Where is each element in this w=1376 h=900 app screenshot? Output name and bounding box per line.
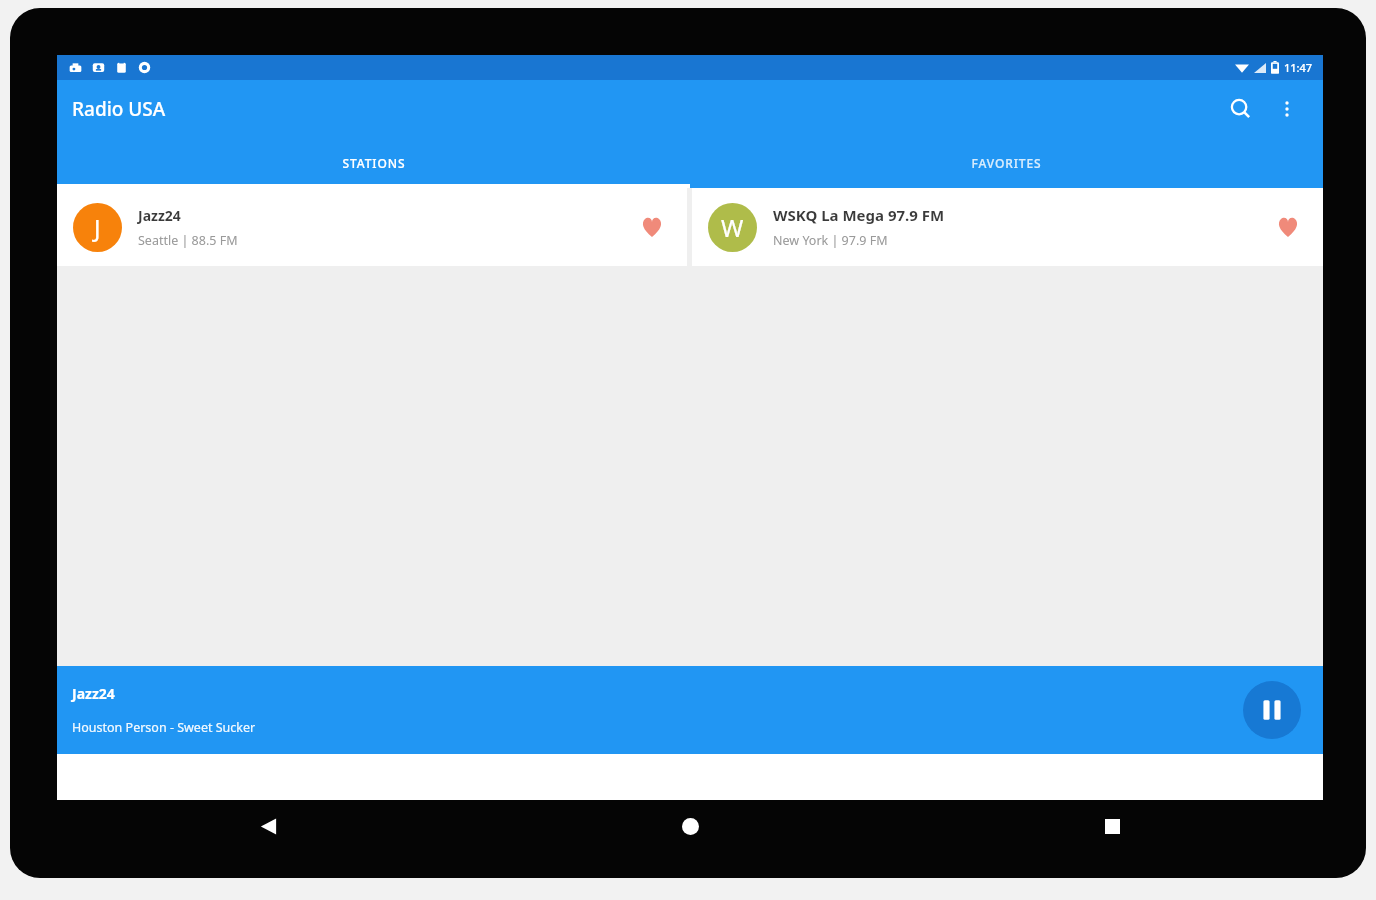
staticText: WSKQ La Mega 97.9 FM (773, 205, 945, 225)
staticText: 11:47 (1284, 60, 1313, 75)
staticText: STATIONS (342, 155, 406, 171)
staticText: New York | 97.9 FM (773, 232, 888, 249)
staticText: Houston Person - Sweet Sucker (72, 719, 256, 736)
button[interactable]: Pause (1243, 681, 1301, 739)
staticText: Jazz24 (72, 684, 115, 703)
staticText: Jazz24 (138, 206, 181, 225)
button[interactable]: STATIONS (57, 138, 690, 188)
button[interactable]: W (692, 188, 1323, 266)
button[interactable]: Favorite (631, 206, 673, 248)
button[interactable]: Home (479, 803, 901, 849)
staticText: Seattle | 88.5 FM (138, 232, 238, 249)
staticText: Radio USA (72, 96, 166, 122)
staticText: J (94, 211, 101, 244)
button[interactable]: J (57, 188, 687, 266)
button[interactable]: FAVORITES (690, 138, 1323, 188)
button[interactable]: Favorite (1267, 206, 1309, 248)
button[interactable]: More options (1265, 87, 1309, 131)
button[interactable]: Back (57, 803, 479, 849)
staticText: W (721, 211, 744, 244)
button[interactable]: Search (1217, 85, 1265, 133)
button[interactable]: Jazz24 (57, 666, 1323, 754)
button[interactable]: Recent apps (901, 803, 1323, 849)
staticText: FAVORITES (971, 155, 1042, 171)
